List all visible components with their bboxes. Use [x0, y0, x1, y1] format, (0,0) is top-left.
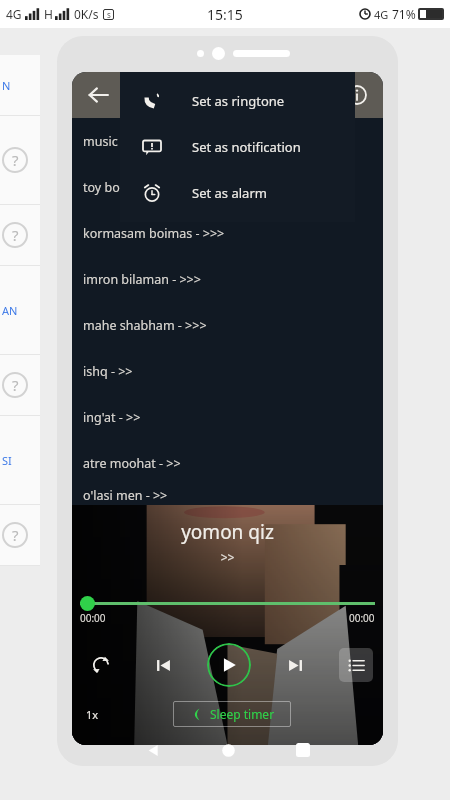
- button[interactable]: Previous: [146, 648, 180, 682]
- button[interactable]: Set as notification: [120, 124, 355, 170]
- button[interactable]: Playlist: [339, 648, 373, 682]
- staticText: ?: [12, 375, 19, 395]
- button[interactable]: Repeat: [82, 646, 120, 684]
- button[interactable]: Sleep timer: [173, 701, 291, 727]
- button[interactable]: atre moohat - >>: [72, 440, 383, 486]
- staticText: ?: [12, 525, 19, 545]
- staticText: ?: [12, 150, 19, 170]
- staticText: o'lasi men - >>: [83, 487, 168, 504]
- button[interactable]: toy bol: [72, 164, 383, 210]
- staticText: 71%: [392, 6, 416, 22]
- button[interactable]: Set as alarm: [120, 170, 355, 216]
- button[interactable]: kormasam boimas - >>>: [72, 210, 383, 256]
- button[interactable]: Play: [207, 643, 251, 687]
- staticText: ing'at - >>: [83, 409, 141, 426]
- staticText: 4G: [6, 6, 22, 22]
- button[interactable]: Seek bar: [80, 595, 375, 611]
- staticText: >>: [72, 549, 383, 565]
- staticText: 0K/s: [74, 6, 99, 22]
- staticText: kormasam boimas - >>>: [83, 225, 225, 242]
- staticText: Sleep timer: [210, 706, 275, 722]
- staticText: atre moohat - >>: [83, 455, 181, 472]
- button[interactable]: Back: [80, 77, 116, 113]
- staticText: 15:15: [207, 5, 243, 24]
- staticText: Set as ringtone: [192, 92, 285, 110]
- button[interactable]: ing'at - >>: [72, 394, 383, 440]
- staticText: music: [83, 133, 118, 150]
- staticText: 4G: [374, 7, 389, 22]
- button[interactable]: imron bilaman - >>>: [72, 256, 383, 302]
- button[interactable]: Set as ringtone: [120, 78, 355, 124]
- staticText: 00:00: [349, 611, 375, 625]
- staticText: yomon qiz: [72, 519, 383, 545]
- button[interactable]: music: [72, 118, 383, 164]
- button[interactable]: mahe shabham - >>>: [72, 302, 383, 348]
- button[interactable]: Next: [278, 648, 312, 682]
- button[interactable]: 1x: [86, 707, 99, 722]
- staticText: toy bol: [83, 179, 123, 196]
- staticText: H: [44, 6, 53, 22]
- staticText: SI: [2, 453, 12, 468]
- staticText: ?: [12, 225, 19, 245]
- staticText: Set as notification: [192, 138, 301, 156]
- staticText: mahe shabham - >>>: [83, 317, 207, 334]
- button[interactable]: o'lasi men - >>: [72, 486, 383, 505]
- staticText: 00:00: [80, 611, 106, 625]
- staticText: s: [107, 9, 111, 20]
- staticText: Set as alarm: [192, 184, 267, 202]
- staticText: AN: [2, 303, 18, 318]
- staticText: ishq - >>: [83, 363, 133, 380]
- staticText: imron bilaman - >>>: [83, 271, 201, 288]
- staticText: N: [2, 78, 11, 93]
- button[interactable]: ishq - >>: [72, 348, 383, 394]
- button[interactable]: Info: [339, 77, 375, 113]
